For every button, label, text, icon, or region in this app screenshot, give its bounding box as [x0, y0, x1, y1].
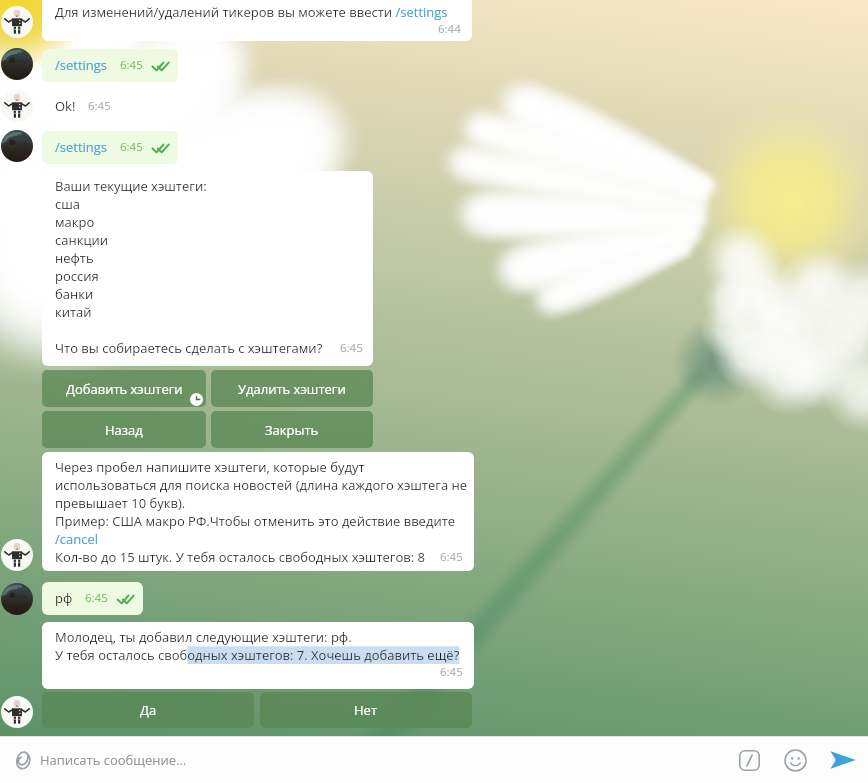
button[interactable]: Через пробел напишите хэштеги, которые б…	[42, 452, 474, 571]
staticText: банки	[55, 285, 94, 303]
button[interactable]: Bot commands	[726, 737, 772, 783]
button[interactable]: /settings	[42, 49, 178, 82]
staticText: макро	[55, 213, 95, 231]
staticText: Ваши текущие хэштеги:	[55, 177, 207, 195]
staticText: 6:44	[438, 21, 461, 37]
button[interactable]: Attach file	[0, 738, 44, 782]
staticText: Пример: США макро РФ.Чтобы отменить это …	[55, 512, 456, 530]
staticText: использоваться для поиска новостей (длин…	[55, 476, 468, 494]
staticText: 6:45	[120, 139, 143, 155]
button[interactable]: Удалить хэштеги	[211, 370, 373, 407]
staticText: Кол-во до 15 штук. У тебя осталось свобо…	[55, 548, 425, 566]
button[interactable]: /settings	[42, 131, 178, 164]
staticText: Нет	[354, 701, 378, 719]
staticText: /cancel	[55, 530, 98, 548]
button[interactable]: Ваши текущие хэштеги:	[42, 171, 373, 366]
staticText: У тебя осталось свободных хэштегов: 7. Х…	[55, 646, 460, 664]
button[interactable]: Да	[42, 692, 254, 728]
staticText: /settings	[55, 56, 108, 74]
staticText: 6:45	[85, 590, 108, 606]
staticText: Для изменений/удалений тикеров вы можете…	[55, 3, 448, 21]
staticText: рф	[55, 589, 73, 607]
staticText: китай	[55, 303, 92, 321]
staticText: 6:45	[120, 57, 143, 73]
staticText: Молодец, ты добавил следующие хэштеги: р…	[55, 628, 352, 646]
staticText: россия	[55, 267, 99, 285]
staticText: санкции	[55, 231, 109, 249]
button[interactable]: Добавить хэштеги	[42, 370, 206, 407]
staticText: сша	[55, 195, 81, 213]
staticText: нефть	[55, 249, 94, 267]
staticText: Что вы собираетесь сделать с хэштегами?	[55, 339, 323, 357]
staticText: Через пробел напишите хэштеги, которые б…	[55, 458, 365, 476]
button[interactable]: Назад	[42, 411, 206, 448]
staticText: Закрыть	[265, 421, 319, 439]
button[interactable]: Закрыть	[211, 411, 373, 448]
staticText: 6:45	[88, 98, 111, 114]
staticText: превышает 10 букв).	[55, 494, 186, 512]
button[interactable]: Молодец, ты добавил следующие хэштеги: р…	[42, 622, 474, 689]
staticText: Назад	[105, 421, 143, 439]
staticText: Да	[140, 701, 157, 719]
button[interactable]: Нет	[260, 692, 472, 728]
button[interactable]: Send	[818, 737, 868, 783]
staticText: Ok!	[55, 97, 76, 115]
staticText: Добавить хэштеги	[66, 380, 183, 398]
button[interactable]: рф	[42, 582, 143, 615]
staticText: 6:45	[440, 664, 463, 680]
button[interactable]: Для изменений/удалений тикеров вы можете…	[42, 0, 472, 41]
staticText: 6:45	[440, 549, 463, 565]
staticText: Удалить хэштеги	[238, 380, 346, 398]
button[interactable]: Ok!	[42, 90, 123, 123]
staticText: /settings	[55, 138, 108, 156]
staticText: Написать сообщение...	[40, 751, 187, 769]
button[interactable]: Emoji	[772, 737, 818, 783]
staticText: 6:45	[340, 340, 363, 356]
